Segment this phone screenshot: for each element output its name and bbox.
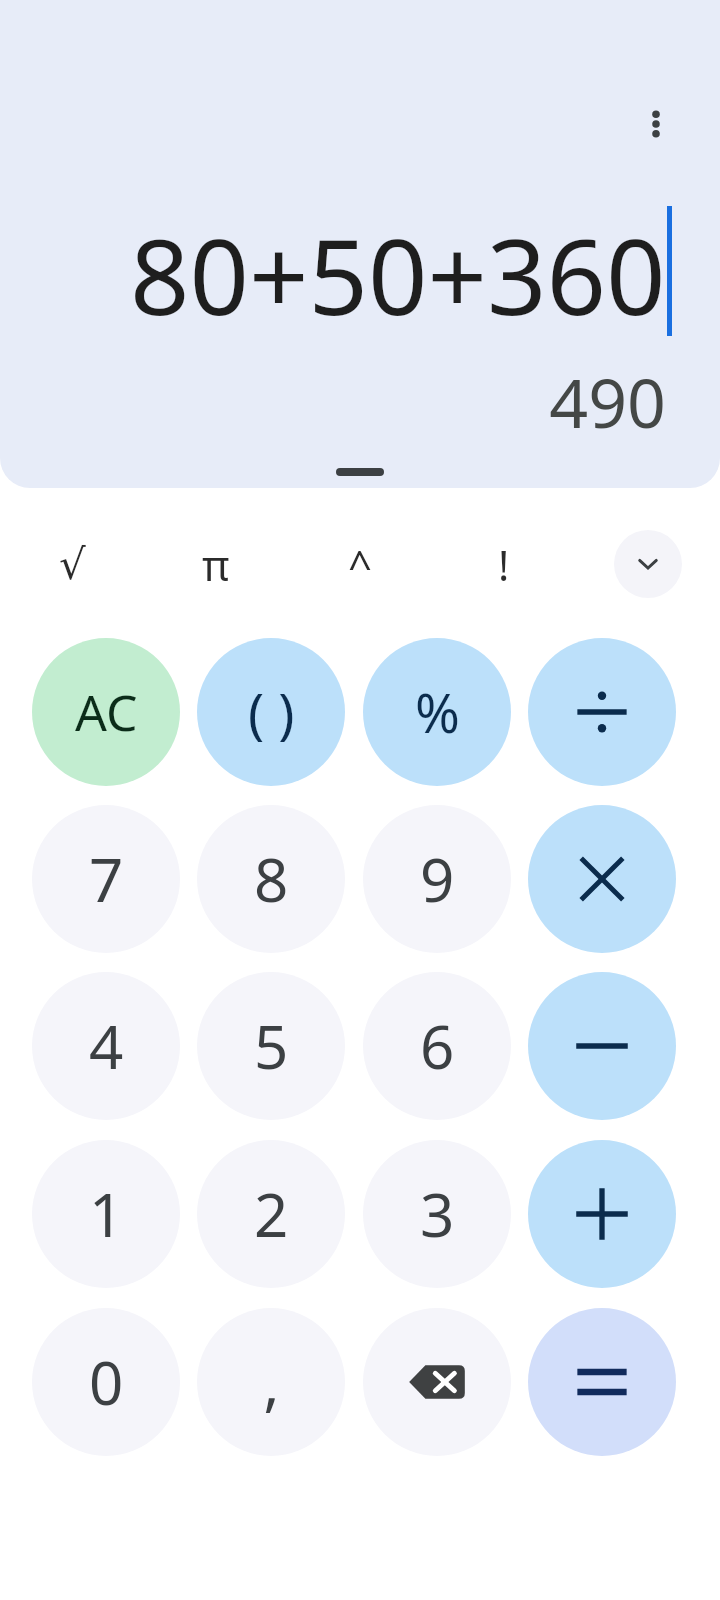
staticText: 2 [254,1173,289,1255]
staticText: 80+50+360 [130,204,666,334]
staticText: 1 [89,1173,124,1255]
button[interactable]: 0 [32,1308,180,1456]
staticText: 8 [254,838,289,920]
button[interactable]: 9 [363,805,511,953]
button[interactable]: 4 [32,972,180,1120]
button[interactable]: More options [614,82,698,166]
staticText: √ [59,540,86,589]
button[interactable] [528,805,676,953]
button[interactable]: 6 [363,972,511,1120]
button[interactable]: ^ [288,518,432,610]
staticText: 7 [89,838,124,920]
button[interactable] [528,1308,676,1456]
staticText: ^ [348,536,373,593]
button[interactable]: ! [432,518,576,610]
button[interactable]: π [144,518,288,610]
button[interactable]: AC [32,638,180,786]
button[interactable]: 8 [197,805,345,953]
staticText: AC [75,678,138,746]
staticText: π [202,536,230,593]
button[interactable]: Show more functions [614,530,682,598]
button[interactable]: % [363,638,511,786]
button[interactable]: 2 [197,1140,345,1288]
button[interactable]: Expand history [336,468,384,476]
staticText: 4 [89,1005,124,1087]
staticText: 5 [254,1005,289,1087]
button[interactable]: 5 [197,972,345,1120]
button[interactable]: 7 [32,805,180,953]
staticText: 0 [89,1341,124,1423]
button[interactable] [528,638,676,786]
button[interactable]: ( ) [197,638,345,786]
staticText: 6 [420,1005,455,1087]
staticText: 3 [420,1173,455,1255]
staticText: % [415,675,460,749]
button[interactable]: Backspace [363,1308,511,1456]
button[interactable] [528,1140,676,1288]
button[interactable]: √ [0,518,144,610]
staticText: 490 [549,355,666,448]
staticText: ( ) [248,675,295,749]
staticText: 9 [420,838,455,920]
staticText: ‚ [264,1341,279,1423]
button[interactable]: ‚ [197,1308,345,1456]
staticText: ! [498,536,510,593]
button[interactable] [528,972,676,1120]
button[interactable]: 3 [363,1140,511,1288]
button[interactable]: 1 [32,1140,180,1288]
